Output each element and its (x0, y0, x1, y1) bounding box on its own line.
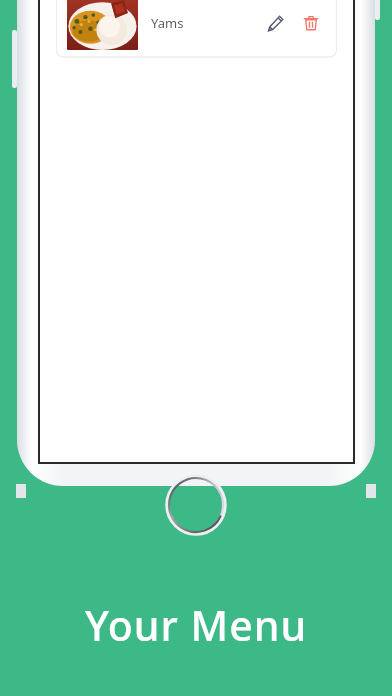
staticText: Your Menu (0, 597, 392, 653)
button[interactable]: Edit (262, 10, 288, 36)
staticText: Yams (151, 14, 184, 32)
button[interactable]: Home (167, 476, 225, 534)
button[interactable]: Yams (56, 0, 337, 58)
button[interactable]: Delete (298, 10, 324, 36)
